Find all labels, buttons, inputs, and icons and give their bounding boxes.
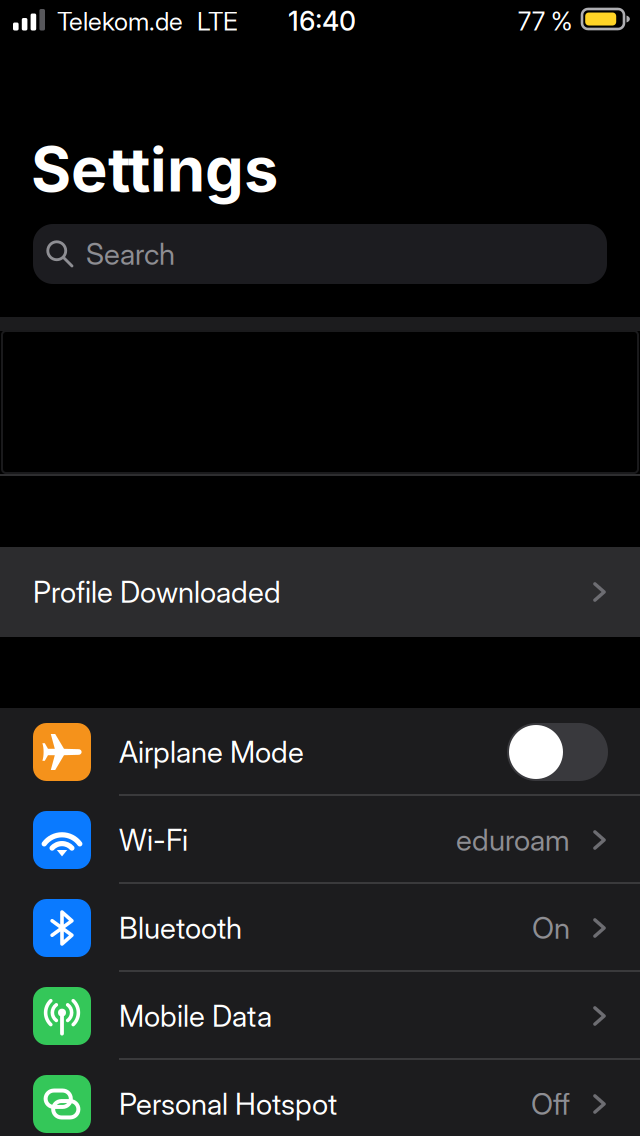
button[interactable]: Airplane Mode (0, 708, 640, 796)
button[interactable]: Bluetooth (0, 884, 640, 972)
staticText: LTE (197, 6, 238, 37)
staticText: On (532, 910, 570, 946)
staticText: Profile Downloaded (33, 574, 281, 610)
staticText: eduroam (456, 822, 570, 858)
staticText: 16:40 (288, 5, 356, 37)
button[interactable]: Mobile Data (0, 972, 640, 1060)
staticText: Mobile Data (119, 998, 272, 1034)
staticText: Personal Hotspot (119, 1086, 337, 1122)
staticText: Wi-Fi (119, 822, 188, 858)
button[interactable]: Personal Hotspot (0, 1060, 640, 1136)
button[interactable]: Wi-Fi (0, 796, 640, 884)
staticText: Off (531, 1086, 570, 1122)
staticText: Airplane Mode (119, 734, 304, 770)
staticText: Settings (31, 132, 278, 206)
button[interactable]: Profile Downloaded (0, 547, 640, 637)
staticText: Telekom.de (57, 6, 183, 37)
staticText: Bluetooth (119, 910, 242, 946)
staticText: Search (86, 236, 175, 272)
staticText: 77 % (518, 6, 572, 37)
